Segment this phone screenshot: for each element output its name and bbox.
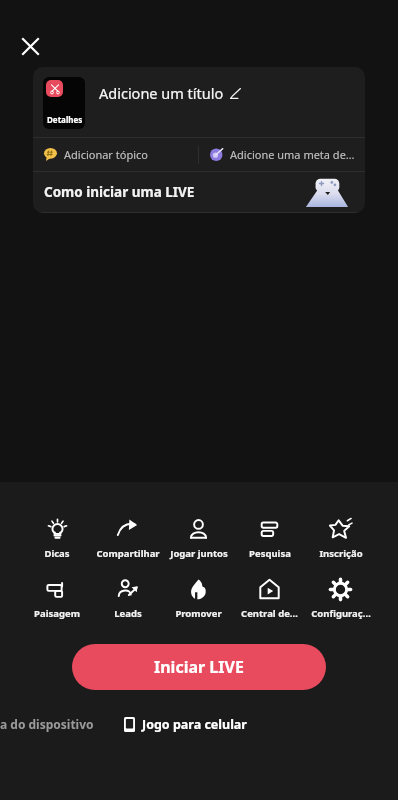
staticText: Detalhes (47, 114, 83, 125)
button[interactable]: Jogo para celular (124, 716, 247, 733)
staticText: Leads (114, 607, 142, 620)
staticText: Configuraç… (311, 607, 371, 620)
staticText: Central de… (241, 607, 298, 620)
staticText: Adicione uma meta de… (230, 147, 355, 162)
button[interactable]: Compartilhar (92, 516, 163, 562)
staticText: Jogar juntos (170, 547, 228, 560)
button[interactable]: Inscrição (305, 516, 376, 562)
button[interactable]: Como iniciar uma LIVE (33, 172, 365, 212)
staticText: Adicione um título (99, 83, 224, 103)
staticText: Promover (175, 607, 222, 620)
staticText: Dicas (44, 547, 70, 560)
staticText: Paisagem (34, 607, 80, 620)
button[interactable]: Adicionar tópico (33, 138, 198, 171)
staticText: Pesquisa (249, 547, 291, 560)
button[interactable]: Iniciar LIVE (72, 644, 326, 690)
button[interactable]: Promover (163, 576, 234, 622)
button[interactable]: Leads (92, 576, 163, 622)
button[interactable]: a do dispositivo (0, 716, 102, 732)
staticText: Jogo para celular (142, 716, 247, 733)
button[interactable]: Detalhes (33, 67, 365, 137)
staticText: Compartilhar (96, 547, 160, 560)
button[interactable]: Central de… (234, 576, 305, 622)
staticText: Iniciar LIVE (154, 656, 244, 678)
button[interactable]: Dicas (22, 516, 92, 562)
button[interactable]: Jogar juntos (163, 516, 234, 562)
button[interactable]: Pesquisa (234, 516, 305, 562)
staticText: Inscrição (319, 547, 363, 560)
button[interactable]: Fechar (12, 28, 48, 64)
button[interactable]: Configuraç… (305, 576, 376, 622)
button[interactable]: Adicione uma meta de… (199, 138, 365, 171)
staticText: Como iniciar uma LIVE (44, 183, 195, 201)
staticText: a do dispositivo (0, 716, 94, 732)
staticText: Adicionar tópico (64, 147, 148, 162)
button[interactable]: Paisagem (22, 576, 92, 622)
